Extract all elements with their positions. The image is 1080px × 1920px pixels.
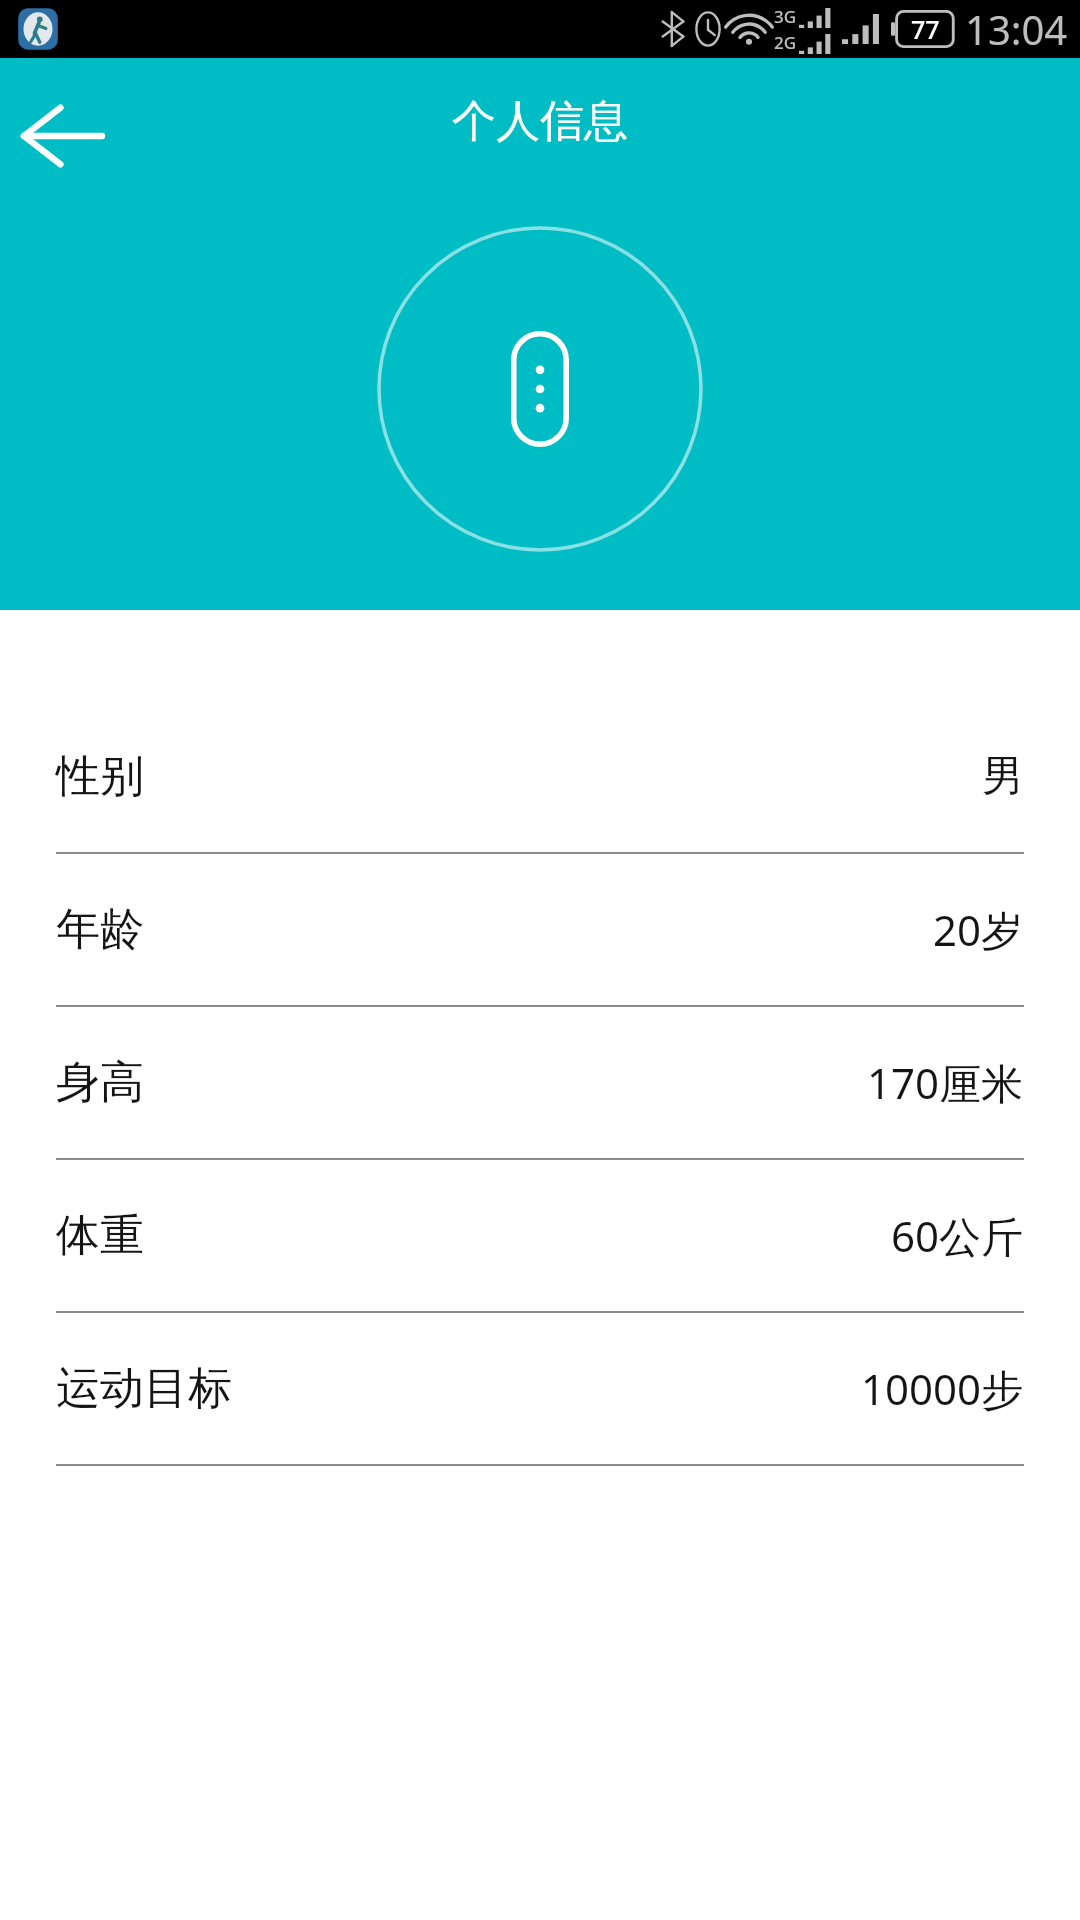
- button[interactable]: 身高: [0, 1007, 1080, 1160]
- staticText: 体重: [56, 1208, 144, 1263]
- staticText: 运动目标: [56, 1361, 232, 1416]
- staticText: 个人信息: [452, 94, 628, 149]
- button[interactable]: Back: [6, 80, 118, 192]
- staticText: 10000步: [861, 1360, 1024, 1417]
- staticText: 男: [982, 750, 1024, 803]
- button[interactable]: 运动目标: [0, 1313, 1080, 1466]
- staticText: 170厘米: [867, 1054, 1024, 1111]
- staticText: 77: [911, 12, 940, 46]
- staticText: 13:04: [965, 2, 1068, 56]
- button[interactable]: 年龄: [0, 854, 1080, 1007]
- staticText: 性别: [56, 749, 144, 804]
- staticText: 20岁: [933, 901, 1024, 958]
- staticText: 年龄: [56, 902, 144, 957]
- staticText: 2G: [774, 31, 797, 54]
- staticText: 3G: [774, 5, 797, 28]
- staticText: 身高: [56, 1055, 144, 1110]
- button[interactable]: 体重: [0, 1160, 1080, 1313]
- button[interactable]: 性别: [0, 701, 1080, 854]
- button[interactable]: Profile avatar: [377, 226, 703, 552]
- staticText: 60公斤: [891, 1207, 1024, 1264]
